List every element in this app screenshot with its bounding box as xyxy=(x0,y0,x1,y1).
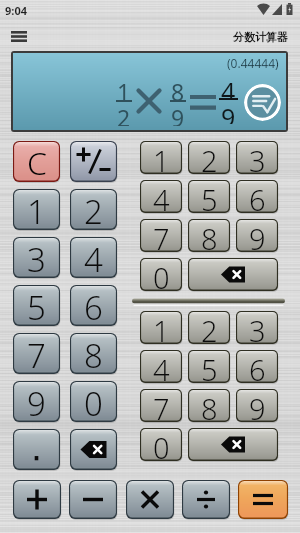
button[interactable]: 3 xyxy=(236,311,278,344)
button[interactable]: 4 xyxy=(140,180,182,213)
button[interactable]: 8 xyxy=(70,333,117,374)
button[interactable]: Plus minus xyxy=(70,141,117,182)
staticText: 8 xyxy=(171,76,185,100)
button[interactable]: Multiply xyxy=(126,480,174,519)
button[interactable]: 2 xyxy=(188,311,230,344)
button[interactable]: Minus xyxy=(69,480,117,519)
button[interactable]: 9 xyxy=(13,381,60,422)
staticText: 3 xyxy=(27,237,46,278)
staticText: 9 xyxy=(27,381,46,422)
button[interactable]: 9 xyxy=(236,219,278,252)
button[interactable]: 3 xyxy=(236,141,278,174)
button[interactable]: Backspace xyxy=(70,429,117,470)
button[interactable]: 4 xyxy=(140,350,182,383)
staticText: 6 xyxy=(84,285,103,326)
button[interactable]: 5 xyxy=(188,350,230,383)
staticText: 5 xyxy=(201,180,218,213)
button[interactable]: 8 xyxy=(188,389,230,422)
button[interactable]: 1 xyxy=(13,189,60,230)
button[interactable]: Backspace xyxy=(188,258,278,291)
staticText: 1 xyxy=(153,311,170,344)
button[interactable]: Divide xyxy=(182,480,230,519)
button[interactable]: 0 xyxy=(140,258,182,291)
button[interactable]: Menu xyxy=(5,24,33,48)
staticText: 分数计算器 xyxy=(233,30,288,44)
button[interactable]: 5 xyxy=(13,285,60,326)
button[interactable]: 5 xyxy=(188,180,230,213)
staticText: C xyxy=(27,141,47,182)
button[interactable]: 7 xyxy=(140,389,182,422)
button[interactable]: 4 xyxy=(70,237,117,278)
staticText: 4 xyxy=(84,237,103,278)
button[interactable]: Equals xyxy=(238,480,288,519)
staticText: 9 xyxy=(249,219,266,252)
button[interactable]: 2 xyxy=(70,189,117,230)
button[interactable]: 0 xyxy=(70,381,117,422)
button[interactable]: 9 xyxy=(236,389,278,422)
button[interactable]: 6 xyxy=(236,180,278,213)
button[interactable]: 7 xyxy=(140,219,182,252)
staticText: 9:04 xyxy=(5,3,27,18)
button[interactable]: Backspace xyxy=(188,428,278,461)
button[interactable]: 6 xyxy=(70,285,117,326)
staticText: 0 xyxy=(84,381,103,422)
staticText: 5 xyxy=(201,350,218,383)
staticText: 3 xyxy=(249,311,266,344)
staticText: 6 xyxy=(249,350,266,383)
button[interactable]: 0 xyxy=(140,428,182,461)
button[interactable]: 1 xyxy=(140,311,182,344)
button[interactable]: Decimal point xyxy=(13,429,60,470)
button[interactable]: 3 xyxy=(13,237,60,278)
staticText: 8 xyxy=(84,333,103,374)
staticText: 6 xyxy=(249,180,266,213)
staticText: 0 xyxy=(153,258,170,291)
button[interactable]: Show steps xyxy=(244,84,281,121)
staticText: 4 xyxy=(153,180,170,213)
staticText: 9 xyxy=(249,389,266,422)
staticText: 2 xyxy=(117,102,131,126)
staticText: 7 xyxy=(153,389,170,422)
staticText: 3 xyxy=(249,141,266,174)
staticText: 8 xyxy=(201,389,218,422)
button[interactable]: Plus xyxy=(13,480,61,519)
staticText: 5 xyxy=(27,285,46,326)
staticText: 9 xyxy=(171,102,185,126)
staticText: 4 xyxy=(153,350,170,383)
button[interactable]: C xyxy=(13,141,60,182)
staticText: 1 xyxy=(153,141,170,174)
staticText: 4 xyxy=(221,74,236,98)
staticText: 7 xyxy=(153,219,170,252)
button[interactable]: 6 xyxy=(236,350,278,383)
staticText: 1 xyxy=(117,76,131,100)
staticText: 9 xyxy=(221,100,236,124)
button[interactable]: 8 xyxy=(188,219,230,252)
staticText: (0.44444) xyxy=(227,55,279,71)
staticText: 8 xyxy=(201,219,218,252)
button[interactable]: 2 xyxy=(188,141,230,174)
staticText: 2 xyxy=(201,311,218,344)
staticText: 1 xyxy=(27,189,46,230)
staticText: 2 xyxy=(201,141,218,174)
staticText: 0 xyxy=(153,428,170,461)
staticText: 7 xyxy=(27,333,46,374)
button[interactable]: 1 xyxy=(140,141,182,174)
staticText: 2 xyxy=(84,189,103,230)
button[interactable]: 7 xyxy=(13,333,60,374)
